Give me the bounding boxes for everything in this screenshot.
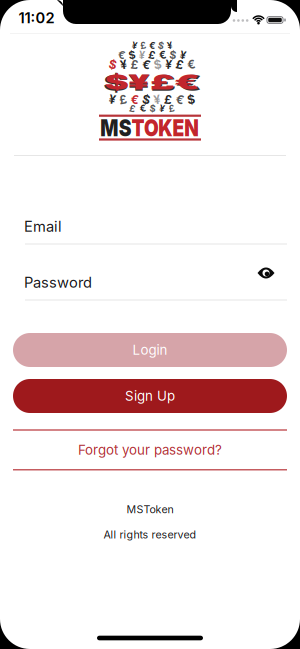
- button[interactable]: Sign Up: [13, 379, 287, 413]
- staticText: £: [131, 57, 139, 72]
- staticText: $¥£€: [126, 70, 178, 94]
- staticText: £: [119, 92, 127, 107]
- staticText: ¥: [139, 49, 145, 61]
- staticText: $: [154, 57, 162, 72]
- staticText: £: [140, 40, 146, 51]
- staticText: €: [159, 49, 166, 61]
- staticText: $: [142, 92, 150, 107]
- staticText: £: [176, 57, 184, 72]
- button[interactable]: Login: [13, 333, 287, 367]
- staticText: ¥: [180, 49, 186, 61]
- staticText: £: [148, 49, 155, 61]
- staticText: Email: [24, 218, 62, 235]
- staticText: Login: [132, 342, 167, 358]
- staticText: $: [149, 103, 155, 114]
- staticText: MS: [91, 115, 128, 141]
- staticText: All rights reserved: [103, 528, 196, 541]
- button[interactable]: Email: [13, 216, 287, 251]
- staticText: $¥£€: [127, 71, 179, 95]
- staticText: Password: [24, 274, 92, 291]
- staticText: ¥: [167, 40, 172, 51]
- staticText: $: [169, 49, 176, 61]
- button[interactable]: [256, 265, 276, 281]
- staticText: €: [131, 92, 139, 107]
- staticText: ¥: [159, 103, 164, 114]
- staticText: £: [129, 103, 135, 114]
- staticText: Forgot your password?: [78, 442, 222, 458]
- staticText: ¥: [165, 57, 172, 72]
- button[interactable]: Password: [13, 272, 287, 307]
- staticText: £: [164, 92, 172, 107]
- staticText: MSToken: [126, 503, 173, 516]
- staticText: $: [158, 40, 164, 51]
- staticText: €: [187, 57, 195, 72]
- staticText: €: [176, 92, 184, 107]
- staticText: £: [168, 103, 174, 114]
- staticText: TOKEN: [128, 115, 208, 141]
- staticText: $: [109, 57, 117, 72]
- button[interactable]: Forgot your password?: [13, 429, 287, 470]
- staticText: Sign Up: [125, 388, 175, 404]
- staticText: €: [118, 49, 125, 61]
- staticText: ¥: [154, 92, 161, 107]
- staticText: ¥: [120, 57, 127, 72]
- staticText: €: [139, 103, 145, 114]
- staticText: €: [149, 40, 155, 51]
- staticText: ¥: [132, 40, 137, 51]
- staticText: $: [187, 92, 195, 107]
- staticText: 11:02: [18, 9, 54, 27]
- staticText: ¥: [109, 92, 116, 107]
- staticText: €: [142, 57, 150, 72]
- staticText: $: [128, 49, 135, 61]
